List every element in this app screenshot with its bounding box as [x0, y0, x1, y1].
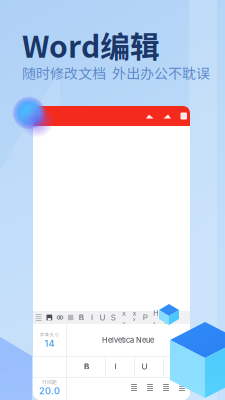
staticText: I — [114, 362, 116, 371]
staticText: P — [143, 313, 148, 322]
staticText: Word编辑 — [22, 23, 160, 66]
staticText: H₂ — [164, 309, 169, 326]
staticText: Helvetica Neue — [102, 335, 154, 344]
staticText: S — [111, 313, 116, 322]
staticText: 14 — [44, 338, 54, 349]
staticText: 行间距 — [42, 378, 57, 385]
staticText: U — [100, 313, 106, 322]
staticText: 20.0 — [39, 385, 60, 397]
staticText: B — [84, 362, 89, 371]
staticText: 字体大小 — [39, 331, 59, 338]
staticText: U — [141, 362, 147, 371]
staticText: x₂ — [122, 309, 126, 326]
staticText: 随时修改文档 外出办公不耽误 — [22, 62, 210, 83]
staticText: H₁ — [153, 309, 158, 326]
staticText: B — [79, 313, 84, 322]
staticText: x² — [133, 309, 137, 326]
staticText: I — [91, 313, 93, 322]
